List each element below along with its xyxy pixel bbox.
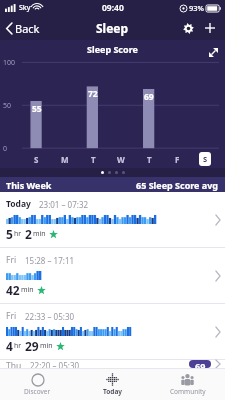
staticText: S [203,154,208,164]
button[interactable]: Fri [0,304,225,359]
staticText: 22:33 – 05:30 [25,311,75,322]
button[interactable]: Settings [177,17,199,39]
staticText: Discover [24,387,51,396]
staticText: Back [15,21,40,36]
staticText: 69 [195,360,206,368]
staticText: 4 [6,338,13,354]
button[interactable]: Community [150,369,225,400]
button[interactable]: Today [0,192,225,247]
staticText: 42 [6,282,20,298]
staticText: 55 [32,103,42,115]
staticText: 5 [6,226,13,242]
staticText: hr [14,341,22,351]
staticText: This Week [6,179,52,191]
button[interactable]: S [34,154,39,165]
button[interactable]: T [91,154,96,165]
button[interactable]: Fri [0,248,225,303]
staticText: 72 [88,88,98,100]
button[interactable]: Thu [0,360,225,368]
staticText: 22:20 – 05:30 [30,360,80,368]
staticText: 2 [25,226,32,242]
staticText: Sleep [96,20,129,36]
button[interactable]: Expand chart [203,42,223,62]
staticText: 69 [144,91,154,103]
staticText: Today [6,198,31,210]
staticText: 65 Sleep Score avg [136,179,219,191]
staticText: 15:28 – 17:11 [25,255,75,266]
button[interactable]: Today [75,369,150,400]
staticText: min [33,229,46,239]
button[interactable]: Add [199,17,221,39]
button[interactable]: W [117,154,125,165]
staticText: 100 [3,58,16,68]
button[interactable]: Discover [0,369,75,400]
staticText: 29 [25,338,39,354]
staticText: Sleep Score [87,43,138,55]
button[interactable]: S [199,152,211,166]
button[interactable]: Back [0,18,46,39]
staticText: Thu [6,360,22,368]
staticText: min [40,341,53,351]
staticText: min [21,285,34,295]
button[interactable]: M [61,154,69,165]
staticText: hr [14,229,22,239]
staticText: 50 [3,101,12,111]
staticText: 0 [3,144,8,154]
button[interactable]: T [147,154,152,165]
staticText: 09:40 [102,2,124,14]
button[interactable]: F [175,154,180,165]
staticText: Sky [19,3,31,13]
staticText: 93% [189,3,204,13]
staticText: Fri [6,310,17,322]
staticText: Fri [6,254,17,266]
staticText: 23:01 – 07:32 [39,199,89,210]
staticText: Today [103,387,123,396]
staticText: Community [170,387,206,396]
